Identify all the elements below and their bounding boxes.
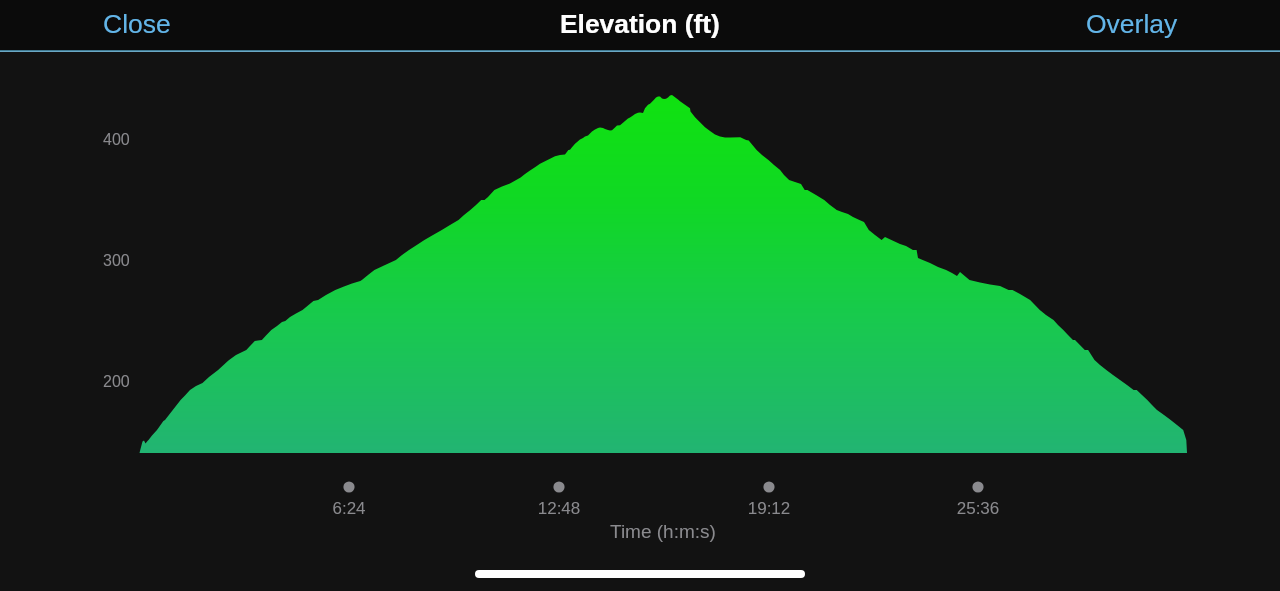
- staticText: 12:48: [519, 499, 599, 518]
- button[interactable]: Close: [103, 9, 171, 39]
- staticText: Overlay: [1086, 9, 1178, 39]
- staticText: 300: [103, 252, 130, 270]
- staticText: 200: [103, 373, 130, 391]
- staticText: Close: [103, 9, 171, 39]
- other: Home indicator: [475, 570, 805, 578]
- staticText: Time (h:m:s): [610, 521, 716, 542]
- staticText: 19:12: [729, 499, 809, 518]
- staticText: 25:36: [938, 499, 1018, 518]
- button[interactable]: Overlay: [1086, 9, 1178, 39]
- staticText: 400: [103, 131, 130, 149]
- staticText: 6:24: [309, 499, 389, 518]
- staticText: Elevation (ft): [560, 9, 720, 38]
